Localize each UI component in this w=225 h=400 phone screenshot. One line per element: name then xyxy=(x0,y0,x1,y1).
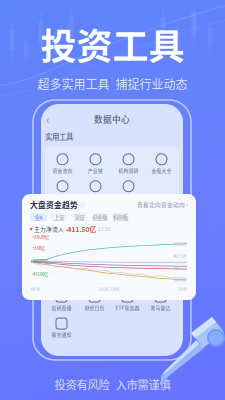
button[interactable]: 资金流向 xyxy=(52,154,72,174)
staticText: -471.60亿 xyxy=(32,271,48,277)
staticText: ‹ xyxy=(46,110,50,128)
staticText: 超多实用工具 捕捉行业动态 xyxy=(37,75,187,92)
staticText: 资金流向 xyxy=(52,167,72,174)
staticText: 产业链 xyxy=(88,167,103,174)
staticText: 财经日历 xyxy=(84,304,104,311)
button[interactable]: 服务通知 xyxy=(51,318,71,338)
staticText: 15:00 xyxy=(178,286,187,292)
staticText: 09:30 xyxy=(31,286,40,292)
staticText: 全A xyxy=(34,213,42,221)
staticText: 4402.13 xyxy=(173,265,186,271)
button[interactable]: 大宗机构席位 xyxy=(113,181,143,201)
button[interactable]: 黑马雷达 xyxy=(150,291,170,311)
button[interactable]: 创业板 xyxy=(91,213,108,221)
staticText: 投研直播 xyxy=(51,304,71,311)
button[interactable]: 机构调研 xyxy=(118,154,138,174)
button[interactable]: 返回 xyxy=(41,113,55,125)
button[interactable]: 全A xyxy=(30,213,47,221)
button[interactable]: 上证 xyxy=(50,213,67,221)
staticText: +276.09亿 xyxy=(32,234,49,240)
staticText: ETF筛选器 xyxy=(115,304,139,311)
staticText: 4617.90 xyxy=(173,253,186,259)
button[interactable]: ESG评级 xyxy=(86,181,105,201)
button[interactable]: 财经日历 xyxy=(84,291,104,311)
staticText: 大事提醒 xyxy=(52,194,72,201)
staticText: 投资有风险 入市需谨慎 xyxy=(54,376,170,392)
staticText: 黑马雷达 xyxy=(150,304,170,311)
button[interactable]: 科创板 xyxy=(112,213,129,221)
staticText: +3.68亿 xyxy=(32,245,45,251)
staticText: 4835.20 xyxy=(173,241,186,247)
staticText: 12:26 xyxy=(98,226,111,232)
staticText: 3994.82 xyxy=(173,277,186,283)
button[interactable]: 查看北向资金动向 › xyxy=(137,200,188,209)
button[interactable]: 金股大全 xyxy=(151,154,171,174)
staticText: 大盘资金趋势 xyxy=(30,199,78,210)
staticText: 实用工具 xyxy=(45,131,73,142)
button[interactable]: 深证 xyxy=(71,213,88,221)
staticText: 主力净流入 xyxy=(34,225,64,233)
staticText: 创业板 xyxy=(92,213,107,221)
button[interactable]: 投研直播 xyxy=(51,291,71,311)
staticText: 深证 xyxy=(74,213,84,221)
staticText: -203.97亿 xyxy=(32,258,48,264)
staticText: ⓘ xyxy=(78,200,85,209)
staticText: -411.50亿 xyxy=(65,224,96,234)
staticText: 机构调研 xyxy=(118,167,138,174)
staticText: 投资工具 xyxy=(40,18,184,70)
button[interactable]: 大事提醒 xyxy=(52,181,72,201)
staticText: 11:30/13:00 xyxy=(99,286,119,292)
staticText: 服务通知 xyxy=(51,331,71,338)
staticText: 上证 xyxy=(54,213,64,221)
staticText: 金股大全 xyxy=(151,167,171,174)
button[interactable]: ETF筛选器 xyxy=(115,291,139,311)
staticText: 数据中心 xyxy=(94,113,130,125)
staticText: 查看北向资金动向 › xyxy=(137,200,188,209)
button[interactable]: 产业链 xyxy=(88,154,103,174)
staticText: 科创板 xyxy=(113,213,128,221)
